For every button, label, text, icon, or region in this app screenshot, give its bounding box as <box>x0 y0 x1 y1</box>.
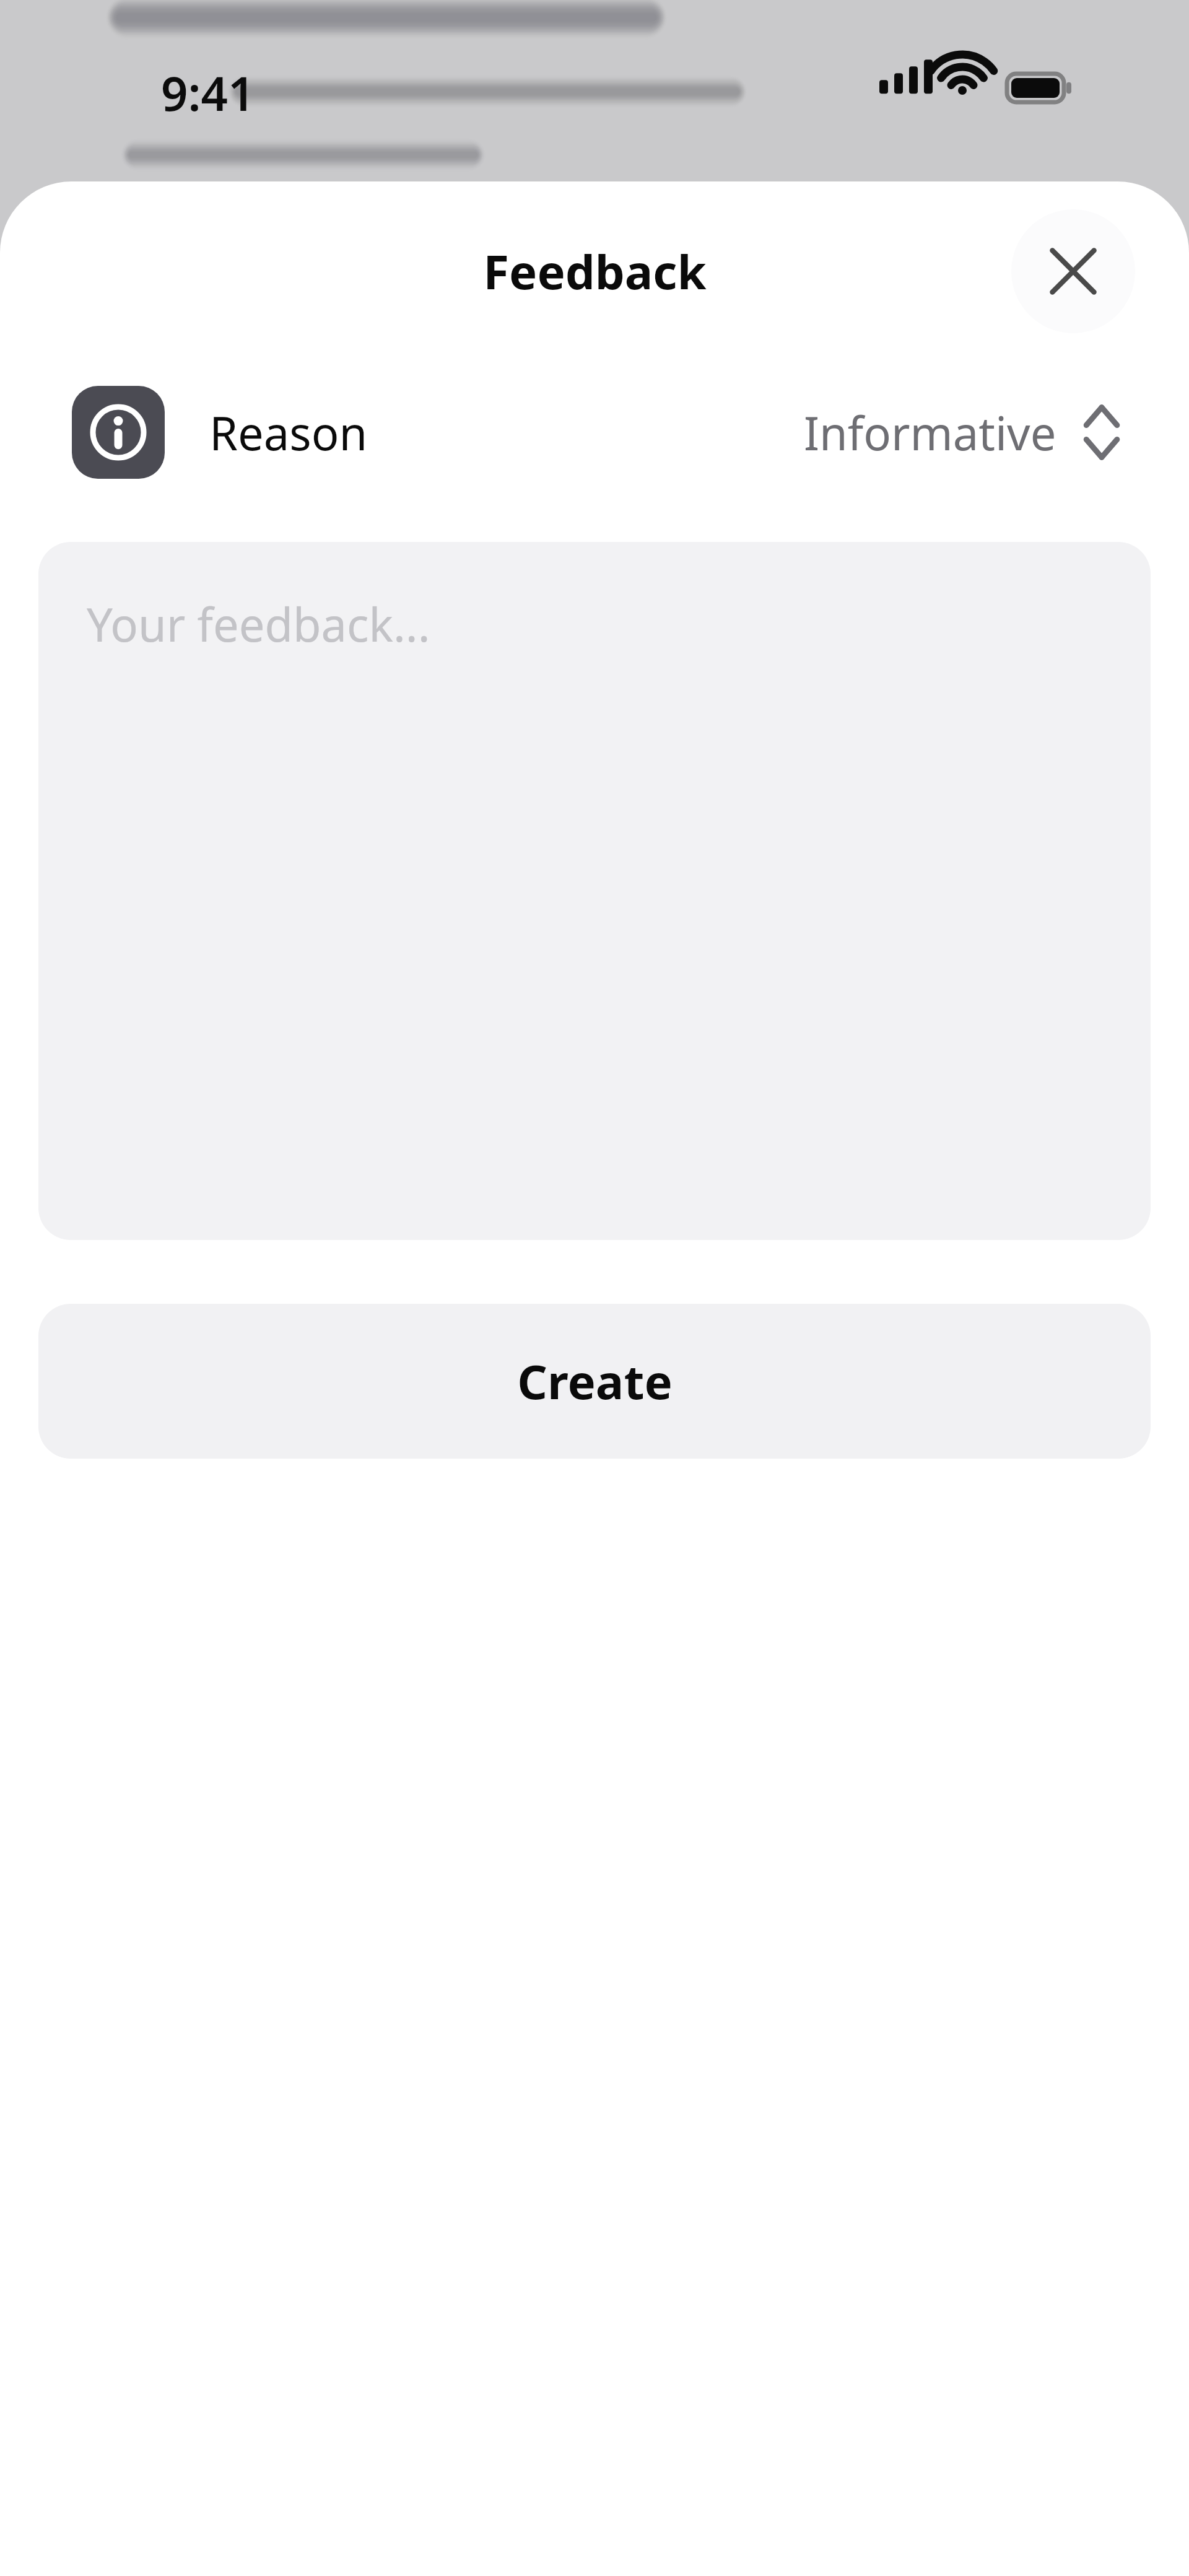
staticText: Your feedback... <box>87 593 430 655</box>
staticText: 9:41 <box>161 61 255 125</box>
staticText: Informative <box>804 401 1056 464</box>
staticText: Feedback <box>483 239 707 303</box>
button[interactable]: Close <box>1011 209 1135 333</box>
staticText: Create <box>517 1349 673 1413</box>
button[interactable]: Create <box>38 1304 1151 1459</box>
staticText: Reason <box>209 401 368 464</box>
button[interactable]: Reason <box>72 361 1121 504</box>
